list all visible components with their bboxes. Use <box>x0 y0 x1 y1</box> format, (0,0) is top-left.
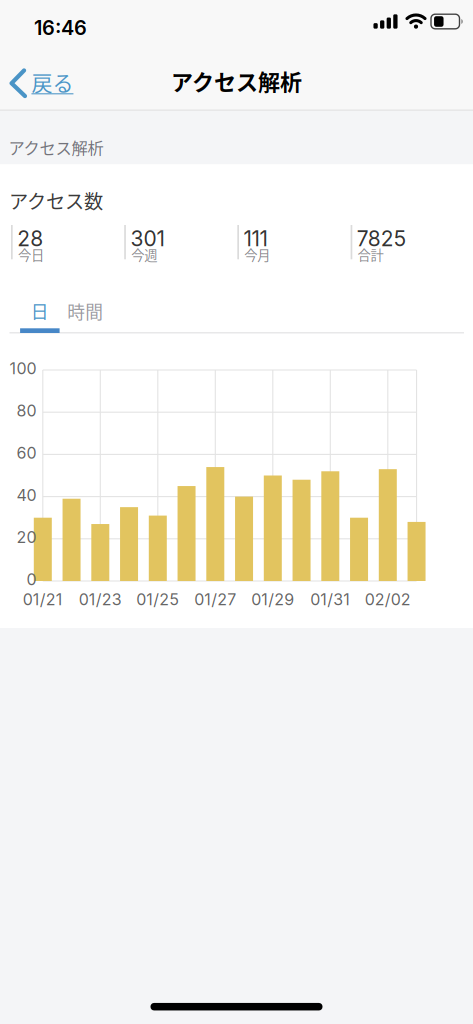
staticText: 02/02 <box>365 590 411 609</box>
staticText: 01/25 <box>136 590 179 609</box>
staticText: 7825 <box>357 226 406 251</box>
staticText: 時間 <box>67 298 103 324</box>
staticText: 28 <box>17 226 43 251</box>
button[interactable]: 日 <box>20 297 60 333</box>
staticText: 301 <box>130 226 164 251</box>
staticText: 01/29 <box>251 590 294 609</box>
button[interactable]: 戻る <box>10 56 73 110</box>
staticText: 40 <box>16 485 36 505</box>
button[interactable]: 時間 <box>63 296 107 326</box>
staticText: 今週 <box>131 245 157 264</box>
staticText: 戻る <box>31 66 73 97</box>
staticText: 01/27 <box>194 590 236 609</box>
staticText: アクセス解析 <box>171 65 302 97</box>
staticText: 日 <box>31 298 49 324</box>
staticText: 111 <box>243 226 267 251</box>
staticText: 01/21 <box>23 590 63 609</box>
staticText: 合計 <box>358 245 384 264</box>
staticText: 0 <box>26 570 36 589</box>
staticText: 80 <box>16 401 36 420</box>
staticText: 16:46 <box>34 16 87 40</box>
staticText: 20 <box>16 528 36 547</box>
staticText: アクセス数 <box>9 186 103 214</box>
staticText: 今月 <box>244 245 270 264</box>
staticText: 01/31 <box>310 590 350 609</box>
staticText: 01/23 <box>79 590 122 609</box>
staticText: アクセス解析 <box>8 135 103 159</box>
staticText: 100 <box>9 359 36 378</box>
staticText: 今日 <box>18 245 44 264</box>
staticText: 60 <box>16 443 36 463</box>
